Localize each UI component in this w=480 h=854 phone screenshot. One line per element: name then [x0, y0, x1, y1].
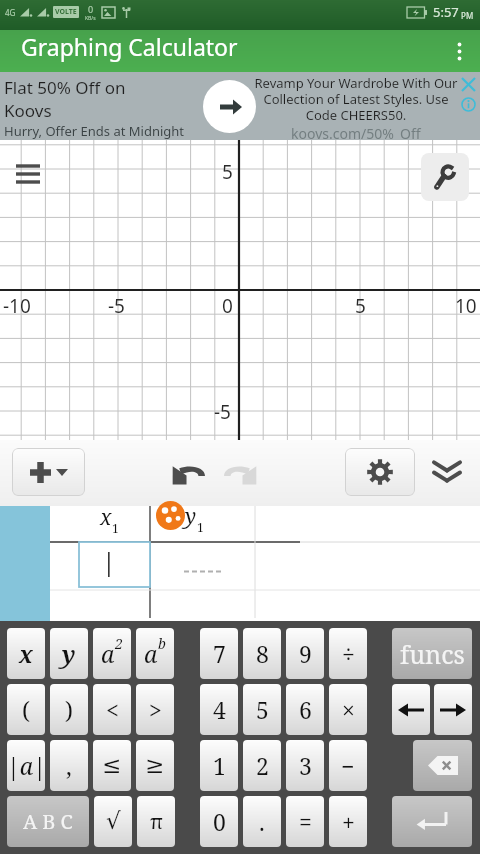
staticText: Graphing Calculator: [21, 31, 238, 62]
button[interactable]: Collapse keyboard: [425, 450, 469, 494]
staticText: ÷: [342, 638, 355, 669]
button[interactable]: Expression input: [79, 542, 150, 587]
button[interactable]: ≥: [136, 740, 174, 791]
staticText: 9: [299, 638, 312, 669]
staticText: Hurry, Offer Ends at Midnight: [4, 122, 185, 140]
button[interactable]: Open ad: [203, 80, 256, 133]
staticText: >: [149, 694, 162, 725]
staticText: Koovs: [4, 99, 52, 122]
staticText: -10: [3, 293, 31, 319]
staticText: |a|: [7, 750, 45, 781]
button[interactable]: +: [329, 796, 367, 847]
staticText: -5: [214, 399, 231, 425]
staticText: √: [106, 808, 121, 835]
button[interactable]: Tools: [421, 153, 469, 201]
staticText: 5: [222, 159, 233, 185]
staticText: ≤: [102, 752, 122, 779]
staticText: y: [185, 502, 197, 531]
button[interactable]: Move right: [434, 684, 472, 735]
staticText: −: [341, 750, 355, 781]
staticText: (: [22, 694, 30, 725]
staticText: 1: [112, 520, 119, 536]
button[interactable]: 3: [286, 740, 324, 791]
button[interactable]: (: [7, 684, 45, 735]
staticText: b: [158, 634, 166, 653]
button[interactable]: .: [243, 796, 281, 847]
button[interactable]: 8: [243, 628, 281, 679]
staticText: 6: [299, 694, 312, 725]
staticText: 0: [213, 806, 226, 837]
staticText: 4: [213, 694, 226, 725]
staticText: funcs: [400, 637, 465, 671]
button[interactable]: ,: [50, 740, 88, 791]
button[interactable]: Graph settings: [345, 448, 415, 496]
button[interactable]: More options: [438, 30, 480, 72]
staticText: Revamp Your Wardrobe With Our Collection…: [254, 74, 458, 123]
staticText: .: [259, 806, 265, 837]
staticText: ): [65, 694, 73, 725]
button[interactable]: Ad info: [458, 94, 478, 114]
staticText: a: [101, 638, 115, 669]
staticText: ,: [66, 750, 72, 781]
button[interactable]: √: [94, 796, 132, 847]
staticText: +: [342, 806, 355, 837]
button[interactable]: <: [93, 684, 131, 735]
button[interactable]: ): [50, 684, 88, 735]
button[interactable]: 6: [286, 684, 324, 735]
button[interactable]: 0: [200, 796, 238, 847]
staticText: 0: [222, 293, 233, 319]
staticText: 5:57: [433, 3, 459, 21]
staticText: Flat 50% Off on: [4, 76, 126, 99]
staticText: 1: [213, 750, 226, 781]
button[interactable]: Close ad: [458, 74, 478, 94]
button[interactable]: 2: [243, 740, 281, 791]
button[interactable]: Enter: [392, 796, 472, 847]
staticText: a: [144, 638, 158, 669]
staticText: -5: [108, 293, 125, 319]
button[interactable]: ×: [329, 684, 367, 735]
staticText: 5: [256, 694, 269, 725]
staticText: KB/s: [85, 15, 96, 22]
staticText: y: [62, 638, 76, 669]
staticText: PM: [459, 10, 474, 21]
button[interactable]: π: [137, 796, 175, 847]
button[interactable]: 1: [200, 740, 238, 791]
button[interactable]: A B C: [7, 796, 89, 847]
button[interactable]: Undo: [166, 451, 210, 495]
staticText: koovs.com/50%_Off: [291, 124, 421, 143]
button[interactable]: Backspace: [413, 740, 472, 791]
button[interactable]: |a|: [7, 740, 45, 791]
button[interactable]: Add expression: [12, 448, 85, 496]
staticText: ≥: [145, 752, 165, 779]
button[interactable]: ÷: [329, 628, 367, 679]
staticText: ×: [342, 694, 355, 725]
staticText: x: [100, 503, 112, 532]
button[interactable]: 5: [243, 684, 281, 735]
button[interactable]: >: [136, 684, 174, 735]
button[interactable]: Menu: [9, 155, 47, 193]
button[interactable]: Move left: [392, 684, 430, 735]
button[interactable]: y: [50, 628, 88, 679]
button[interactable]: =: [286, 796, 324, 847]
staticText: 1: [197, 519, 204, 535]
staticText: 8: [256, 638, 269, 669]
staticText: 10: [455, 293, 477, 319]
staticText: VOLTE: [55, 7, 77, 17]
staticText: =: [299, 806, 312, 837]
button[interactable]: 9: [286, 628, 324, 679]
button[interactable]: a: [93, 628, 131, 679]
staticText: x: [19, 638, 33, 669]
button[interactable]: a: [136, 628, 174, 679]
button[interactable]: funcs: [392, 628, 472, 679]
button[interactable]: ≤: [93, 740, 131, 791]
staticText: 0: [88, 3, 94, 15]
staticText: 3: [299, 750, 312, 781]
button[interactable]: 4: [200, 684, 238, 735]
button[interactable]: x: [7, 628, 45, 679]
staticText: 2: [115, 634, 123, 653]
button[interactable]: 7: [200, 628, 238, 679]
button[interactable]: Redo: [218, 451, 262, 495]
staticText: 4G: [5, 7, 16, 18]
staticText: 7: [213, 638, 226, 669]
button[interactable]: −: [329, 740, 367, 791]
